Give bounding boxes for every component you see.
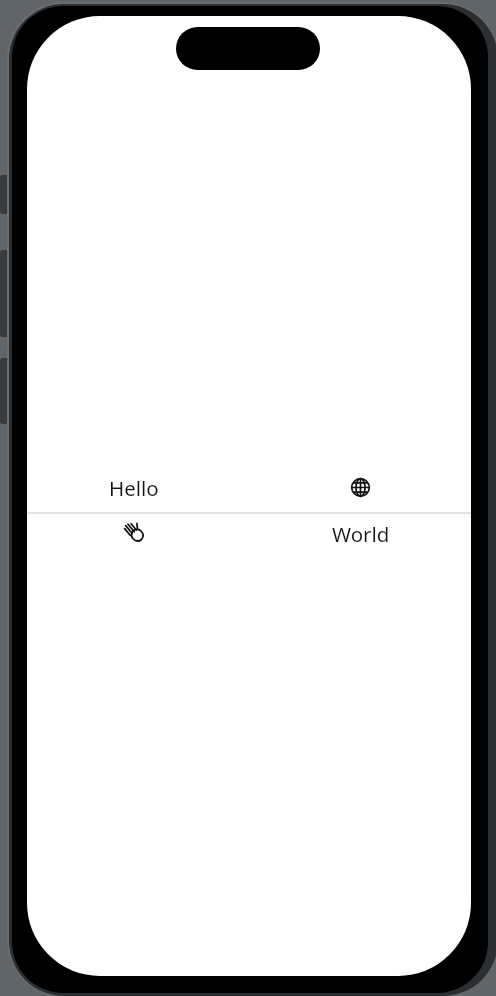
button[interactable]: Hello xyxy=(27,466,471,512)
staticText: Hello xyxy=(109,474,159,502)
staticText: World xyxy=(332,520,390,548)
button[interactable]: World xyxy=(27,514,471,560)
